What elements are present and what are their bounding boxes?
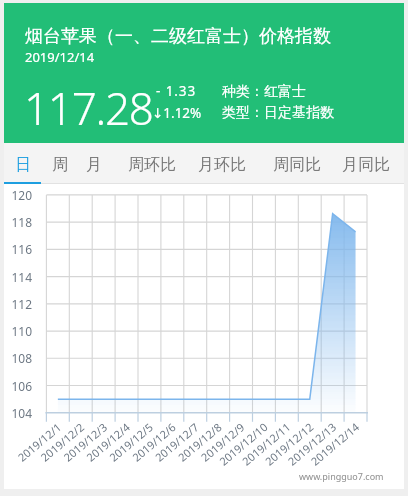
button[interactable]: 月环比 [193,143,251,184]
staticText: - 1.33 [156,82,197,100]
staticText: ↓1.12% [152,104,202,122]
staticText: 月环比 [198,155,246,175]
staticText: 月同比 [342,155,390,175]
staticText: 日 [15,155,31,175]
staticText: 117.28 [24,78,153,138]
staticText: 2019/12/14 [25,48,95,66]
button[interactable]: 日 [4,143,41,184]
staticText: 周同比 [273,155,321,175]
staticText: 类型：日定基指数 [222,104,334,122]
staticText: 烟台苹果（一、二级红富士）价格指数 [25,25,331,48]
staticText: 周环比 [128,155,176,175]
other: 价格指数走势图 [0,0,408,496]
button[interactable]: 月 [77,143,111,184]
button[interactable] [4,3,404,143]
button[interactable]: 周同比 [268,143,326,184]
staticText: 种类：红富士 [222,83,306,101]
staticText: 周 [52,155,68,175]
button[interactable]: 周 [42,143,78,184]
staticText: 月 [86,155,102,175]
button[interactable]: 周环比 [123,143,181,184]
staticText: www.pingguo7.com [299,470,384,482]
button[interactable]: 月同比 [336,143,396,184]
